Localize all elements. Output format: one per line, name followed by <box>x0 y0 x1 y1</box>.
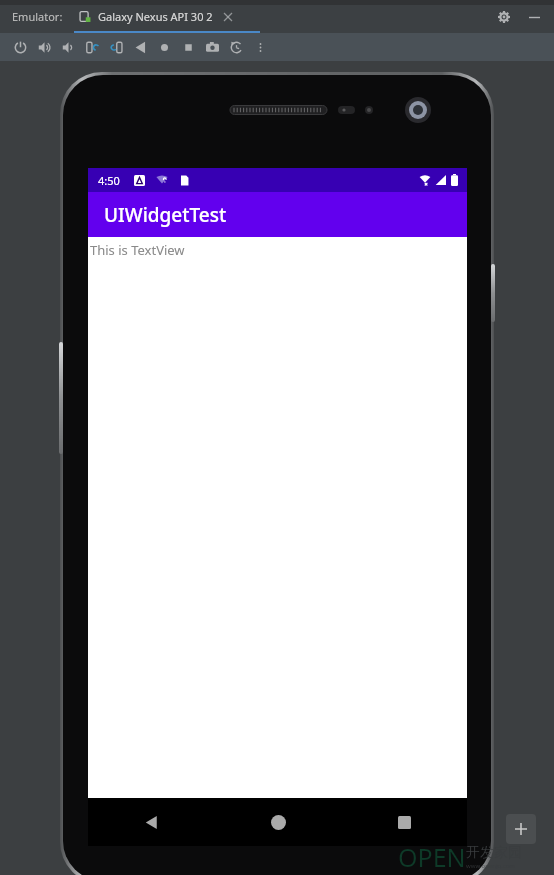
staticText: 4:50 <box>98 173 120 188</box>
button[interactable]: UIWidgetTest <box>88 192 467 237</box>
button[interactable]: Home <box>152 35 176 59</box>
staticText: UIWidgetTest <box>104 202 227 228</box>
button[interactable]: Power <box>8 35 32 59</box>
button[interactable]: Overview <box>176 35 200 59</box>
staticText: OPEN <box>398 840 466 874</box>
button[interactable]: Volume <box>59 342 63 454</box>
button[interactable]: Volume up <box>32 35 56 59</box>
staticText: 开发家园 <box>466 844 522 862</box>
button[interactable]: Galaxy Nexus API 30 2 <box>79 0 235 33</box>
button[interactable]: More <box>248 35 272 59</box>
button[interactable]: Back <box>88 798 215 846</box>
button[interactable]: Back <box>128 35 152 59</box>
button[interactable]: Power <box>491 264 495 322</box>
button[interactable]: Rotate left <box>80 35 104 59</box>
staticText: www.openjq.com <box>466 862 515 870</box>
button[interactable]: Home <box>215 798 341 846</box>
staticText: Galaxy Nexus API 30 2 <box>98 9 213 24</box>
staticText: Emulator: <box>12 9 63 24</box>
button[interactable]: Close tab <box>221 10 235 24</box>
button[interactable]: Minimize <box>524 7 544 27</box>
button[interactable]: Screenshot <box>200 35 224 59</box>
button[interactable]: Rotate right <box>104 35 128 59</box>
button[interactable]: History <box>224 35 248 59</box>
staticText: This is TextView <box>90 241 185 259</box>
button[interactable]: Zoom in <box>506 814 536 844</box>
button[interactable]: Settings <box>494 7 514 27</box>
button[interactable]: Overview <box>341 798 467 846</box>
button[interactable]: Volume down <box>56 35 80 59</box>
